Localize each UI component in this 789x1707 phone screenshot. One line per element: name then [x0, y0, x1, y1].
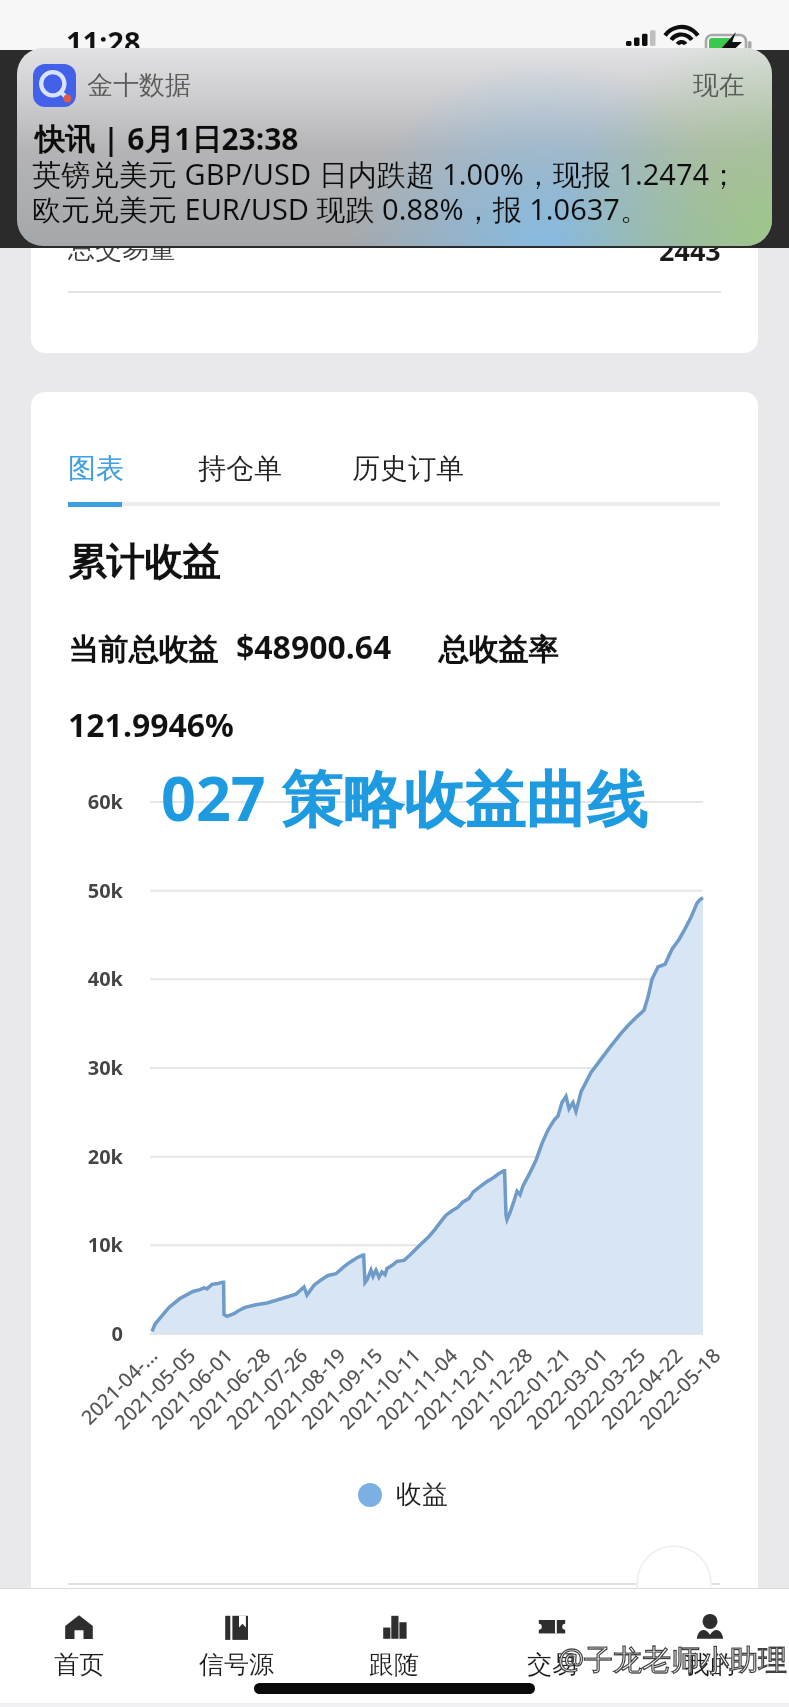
button[interactable]: 我的 — [631, 1589, 789, 1707]
button[interactable]: 历史订单 — [352, 449, 464, 488]
staticText: 总收益率 — [438, 631, 558, 669]
button[interactable]: Add — [636, 1545, 712, 1621]
staticText: 2021-06-28 — [116, 1342, 276, 1502]
staticText: 40k — [31, 965, 123, 992]
staticText: 60k — [31, 788, 123, 815]
staticText: 金十数据 — [87, 69, 191, 102]
staticText: 2443 — [659, 232, 721, 269]
staticText: 我的 — [685, 1649, 735, 1680]
staticText: 历史订单 — [352, 451, 464, 486]
staticText: $48900.64 — [236, 625, 392, 669]
staticText: 2021-10-11 — [266, 1342, 426, 1502]
staticText: 0 — [31, 1320, 123, 1347]
staticText: 信号源 — [199, 1649, 274, 1680]
staticText: 027 策略收益曲线 — [161, 756, 648, 839]
staticText: 50k — [31, 877, 123, 904]
staticText: 交易 — [527, 1649, 577, 1680]
staticText: 2021-06-01 — [78, 1342, 238, 1502]
staticText: 2021-09-15 — [228, 1342, 388, 1502]
staticText: 2021-04-... — [31, 1342, 163, 1502]
button[interactable]: 信号源 — [157, 1589, 315, 1707]
button[interactable]: 跟随 — [315, 1589, 473, 1707]
staticText: 首页 — [54, 1649, 104, 1680]
staticText: 累计收益 — [68, 538, 220, 586]
staticText: 20k — [31, 1143, 123, 1170]
staticText: 总交易量 — [68, 232, 176, 266]
staticText: 持仓单 — [198, 451, 282, 486]
staticText: 2021-08-19 — [191, 1342, 351, 1502]
staticText: 10k — [31, 1231, 123, 1258]
staticText: 2022-01-21 — [416, 1342, 576, 1502]
staticText: 2021-12-28 — [378, 1342, 538, 1502]
staticText: @子龙老师小助理 — [558, 1639, 788, 1679]
staticText: 2022-05-18 — [566, 1342, 726, 1502]
staticText: 跟随 — [369, 1649, 419, 1680]
staticText: 收益 — [396, 1478, 448, 1511]
staticText: 快讯 | 6月1日23:38 — [35, 118, 299, 159]
staticText: 英镑兑美元 GBP/USD 日内跌超 1.00%，现报 1.2474； — [32, 154, 739, 194]
staticText: 11:28 — [66, 22, 141, 61]
staticText: 2021-07-26 — [153, 1342, 313, 1502]
button[interactable]: 持仓单 — [198, 449, 282, 488]
staticText: 2021-05-05 — [41, 1342, 201, 1502]
staticText: 2022-04-22 — [528, 1342, 688, 1502]
staticText: 现在 — [693, 69, 745, 102]
staticText: 2022-03-01 — [453, 1342, 613, 1502]
staticText: @子龙老师小助理 — [558, 1639, 788, 1679]
staticText: 2021-12-01 — [341, 1342, 501, 1502]
staticText: 欧元兑美元 EUR/USD 现跌 0.88%，报 1.0637。 — [32, 189, 649, 229]
staticText: 2021-11-04 — [303, 1342, 463, 1502]
button[interactable]: 交易 — [473, 1589, 631, 1707]
staticText: 2022-03-25 — [491, 1342, 651, 1502]
staticText: 121.9946% — [68, 703, 234, 747]
staticText: 图表 — [68, 451, 124, 486]
staticText: 30k — [31, 1054, 123, 1081]
button[interactable]: 首页 — [0, 1589, 157, 1707]
button[interactable]: 图表 — [68, 449, 124, 488]
staticText: 当前总收益 — [68, 631, 218, 669]
